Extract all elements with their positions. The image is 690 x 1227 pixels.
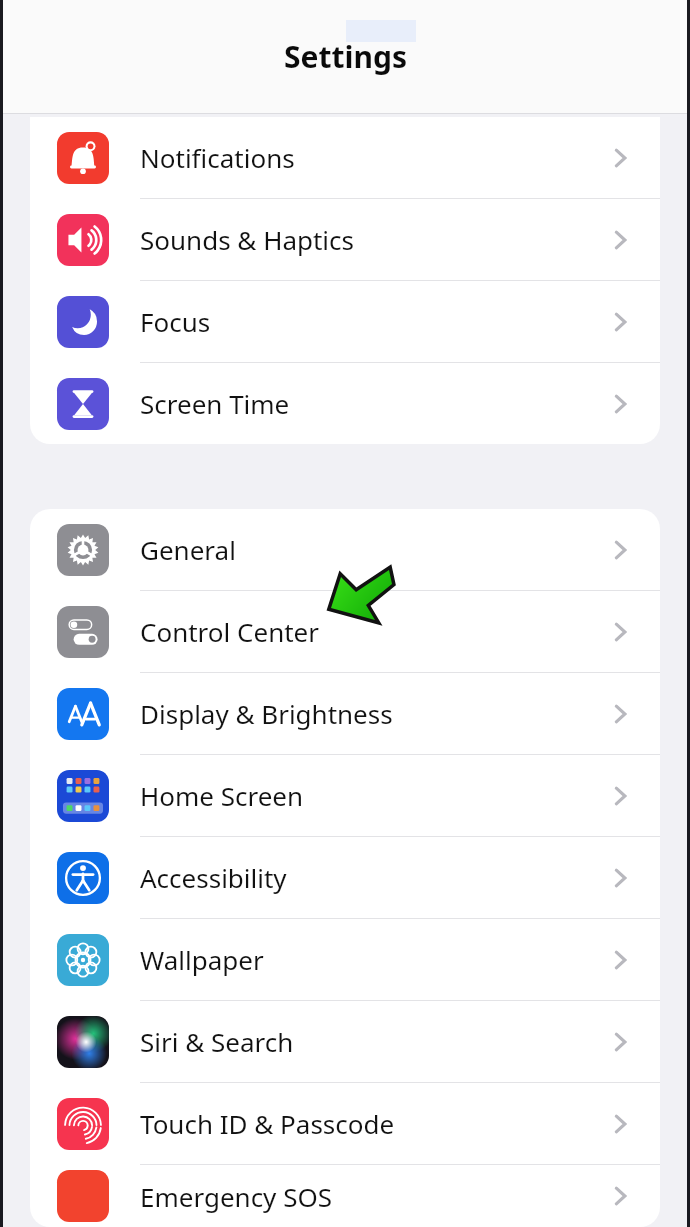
- staticText: General: [140, 532, 236, 567]
- staticText: Screen Time: [140, 386, 290, 421]
- staticText: Wallpaper: [140, 942, 264, 977]
- staticText: Focus: [140, 304, 211, 339]
- staticText: Notifications: [140, 140, 295, 175]
- button[interactable]: General: [30, 509, 660, 590]
- staticText: Emergency SOS: [140, 1179, 332, 1214]
- button[interactable]: Accessibility: [30, 837, 660, 918]
- button[interactable]: Touch ID & Passcode: [30, 1083, 660, 1164]
- staticText: Control Center: [140, 614, 319, 649]
- staticText: Touch ID & Passcode: [140, 1106, 395, 1141]
- button[interactable]: Screen Time: [30, 363, 660, 444]
- button[interactable]: Home Screen: [30, 755, 660, 836]
- button[interactable]: Control Center: [30, 591, 660, 672]
- staticText: Home Screen: [140, 778, 304, 813]
- button[interactable]: Siri & Search: [30, 1001, 660, 1082]
- button[interactable]: Emergency SOS: [30, 1165, 660, 1227]
- button[interactable]: Focus: [30, 281, 660, 362]
- staticText: Display & Brightness: [140, 696, 393, 731]
- staticText: Siri & Search: [140, 1024, 294, 1059]
- button[interactable]: Notifications: [30, 117, 660, 198]
- staticText: Settings: [284, 36, 407, 77]
- button[interactable]: Display & Brightness: [30, 673, 660, 754]
- button[interactable]: Sounds & Haptics: [30, 199, 660, 280]
- staticText: Accessibility: [140, 860, 287, 895]
- staticText: Sounds & Haptics: [140, 222, 355, 257]
- button[interactable]: Wallpaper: [30, 919, 660, 1000]
